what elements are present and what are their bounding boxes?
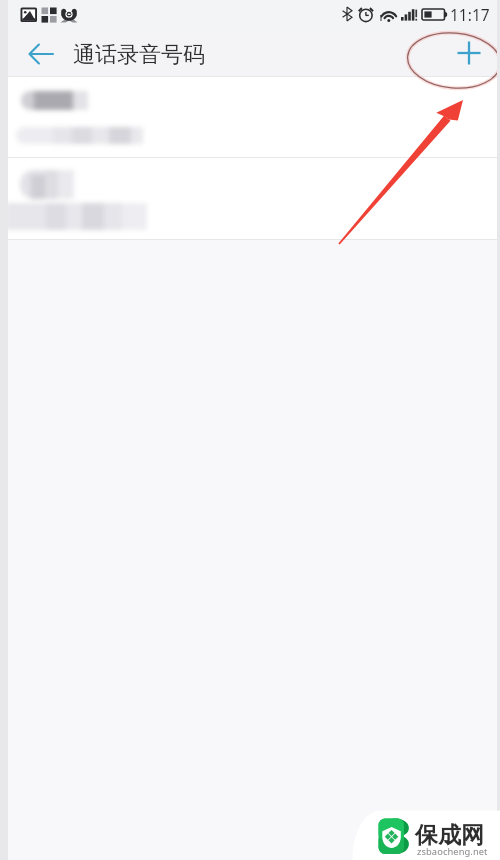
button[interactable]: Back xyxy=(20,36,62,72)
button[interactable]: Add xyxy=(449,33,489,73)
staticText: 保成网 xyxy=(415,821,484,850)
staticText: zsbaocheng.net xyxy=(417,845,488,858)
button[interactable] xyxy=(0,158,500,239)
staticText: 通话录音号码 xyxy=(73,41,205,69)
button[interactable] xyxy=(0,77,500,157)
staticText: 11:17 xyxy=(450,4,490,25)
